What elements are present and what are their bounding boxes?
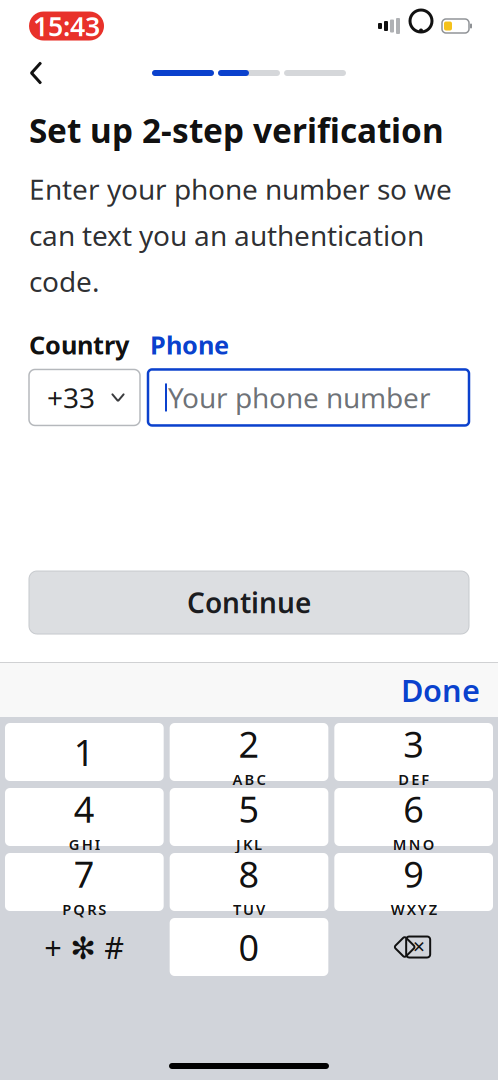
staticText: JKL xyxy=(236,835,262,854)
staticText: Continue xyxy=(187,584,311,621)
button[interactable]: 7 xyxy=(5,853,164,911)
button[interactable]: 6 xyxy=(334,788,493,846)
staticText: ABC xyxy=(232,770,265,789)
button[interactable]: 9 xyxy=(334,853,493,911)
staticText: DEF xyxy=(398,770,429,789)
staticText: + ✻ # xyxy=(44,927,124,967)
button[interactable]: Continue xyxy=(29,571,469,634)
staticText: Your phone number xyxy=(168,379,431,416)
staticText: +33 xyxy=(47,379,95,416)
staticText: TUV xyxy=(233,900,265,919)
staticText: Enter your phone number so we can text y… xyxy=(29,170,452,300)
staticText: PQRS xyxy=(62,900,106,919)
button[interactable]: 5 xyxy=(170,788,328,846)
button[interactable]: 2 xyxy=(170,723,328,781)
staticText: WXYZ xyxy=(391,900,437,919)
staticText: 8 xyxy=(238,850,259,898)
staticText: 0 xyxy=(238,923,259,971)
staticText: ✕ xyxy=(412,938,425,956)
button[interactable]: +33 xyxy=(29,369,140,425)
button[interactable]: 3 xyxy=(334,723,493,781)
staticText: 1 xyxy=(74,728,95,776)
staticText: 5 xyxy=(238,785,259,833)
button[interactable]: 4 xyxy=(5,788,164,846)
staticText: Phone xyxy=(150,328,229,361)
button[interactable]: Done xyxy=(383,662,498,718)
button[interactable]: Back xyxy=(14,53,58,93)
staticText: 4 xyxy=(74,785,95,833)
staticText: 6 xyxy=(403,785,424,833)
staticText: MNO xyxy=(393,835,435,854)
staticText: 7 xyxy=(74,850,95,898)
staticText: Done xyxy=(401,670,480,710)
button[interactable]: 0 xyxy=(170,918,328,976)
staticText: GHI xyxy=(69,835,100,854)
button[interactable]: Symbols xyxy=(5,918,164,976)
staticText: 9 xyxy=(403,850,424,898)
staticText: Country xyxy=(29,328,129,361)
staticText: 15:43 xyxy=(33,8,100,44)
button[interactable]: 8 xyxy=(170,853,328,911)
button[interactable]: Your phone number xyxy=(148,369,469,425)
staticText: 2 xyxy=(238,720,259,768)
staticText: Set up 2-step verification xyxy=(29,108,444,152)
button[interactable]: 1 xyxy=(5,723,164,781)
staticText: 3 xyxy=(403,720,424,768)
button[interactable]: Delete xyxy=(334,918,493,976)
